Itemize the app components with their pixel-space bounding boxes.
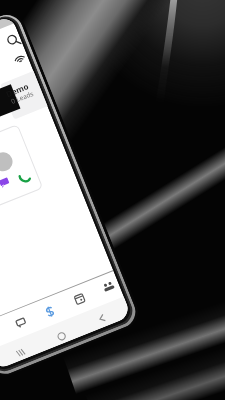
staticText: 0 Leads [10,89,35,106]
staticText: Demo [4,80,30,99]
